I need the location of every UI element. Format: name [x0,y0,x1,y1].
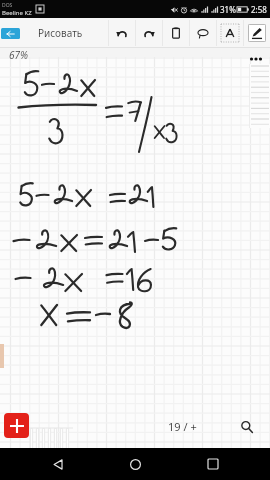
button[interactable]: Page 6 [60,428,63,448]
button[interactable]: Back [1,28,20,39]
button[interactable]: Text [216,18,243,48]
button[interactable]: Back [38,448,78,480]
button[interactable]: Page 7 [66,428,69,448]
button[interactable]: Pen [243,18,270,48]
button[interactable]: Recent apps [193,448,233,480]
staticText: DOS [2,2,13,9]
button[interactable]: Page 2 [36,428,39,448]
button[interactable]: Paste [162,18,189,48]
button[interactable]: Page 5 [54,428,57,448]
button[interactable]: Shape [189,18,216,48]
staticText: 31% [220,4,236,15]
staticText: 2:58 [251,4,267,15]
staticText: 19 / + [168,419,197,434]
staticText: Рисовать [38,26,83,40]
button[interactable]: Search [238,418,255,435]
button[interactable]: Page 4 [48,428,51,448]
button[interactable]: Page 3 [42,428,45,448]
button[interactable]: 19 / + [166,418,199,435]
button[interactable]: Redo [135,18,162,48]
button[interactable]: Page 1 [30,428,33,448]
button[interactable]: Home [115,448,155,480]
button[interactable]: Undo [108,18,135,48]
button[interactable]: Add page [4,413,29,438]
button[interactable]: More options [246,49,266,69]
staticText: 67% [9,48,29,62]
staticText: Beeline KZ [2,9,32,17]
